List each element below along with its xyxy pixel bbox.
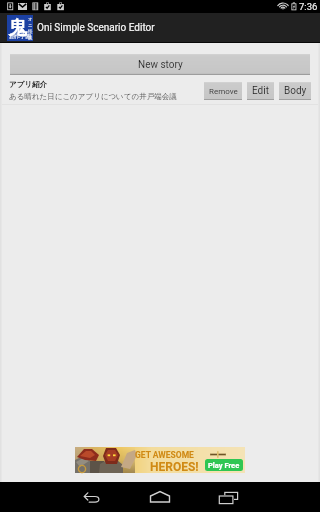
staticText: 創作学園 [9,33,31,40]
staticText: New story [138,59,183,71]
staticText: Play Free [208,461,240,470]
staticText: HEROES! [150,460,199,474]
staticText: 鬼 [8,16,27,40]
staticText: Edit [252,85,269,97]
staticText: 7:36 [299,1,318,12]
staticText: Remove [209,87,238,96]
staticText: ニ [28,23,33,29]
staticText: アプリ紹介 [9,80,48,89]
staticText: ある晴れた日にこのアプリについての井戸端会議 [9,92,177,101]
button[interactable]: アプリ紹介 [0,77,320,104]
staticText: 談 [28,35,33,41]
button[interactable]: Remove [204,82,242,100]
button[interactable]: Edit [247,82,274,100]
button[interactable]: New story [10,54,310,75]
button[interactable]: Body [279,82,311,100]
button[interactable]: Home [140,482,180,512]
staticText: Body [284,85,307,97]
button[interactable]: GET AWESOME [75,447,245,473]
button[interactable]: Play Free [205,459,243,471]
button[interactable]: Recent apps [214,482,254,512]
staticText: Oni Simple Scenario Editor [37,22,155,34]
staticText: 怪 [28,29,33,35]
staticText: オ [28,17,33,23]
staticText: GET AWESOME [135,450,194,460]
button[interactable]: Back [72,482,112,512]
